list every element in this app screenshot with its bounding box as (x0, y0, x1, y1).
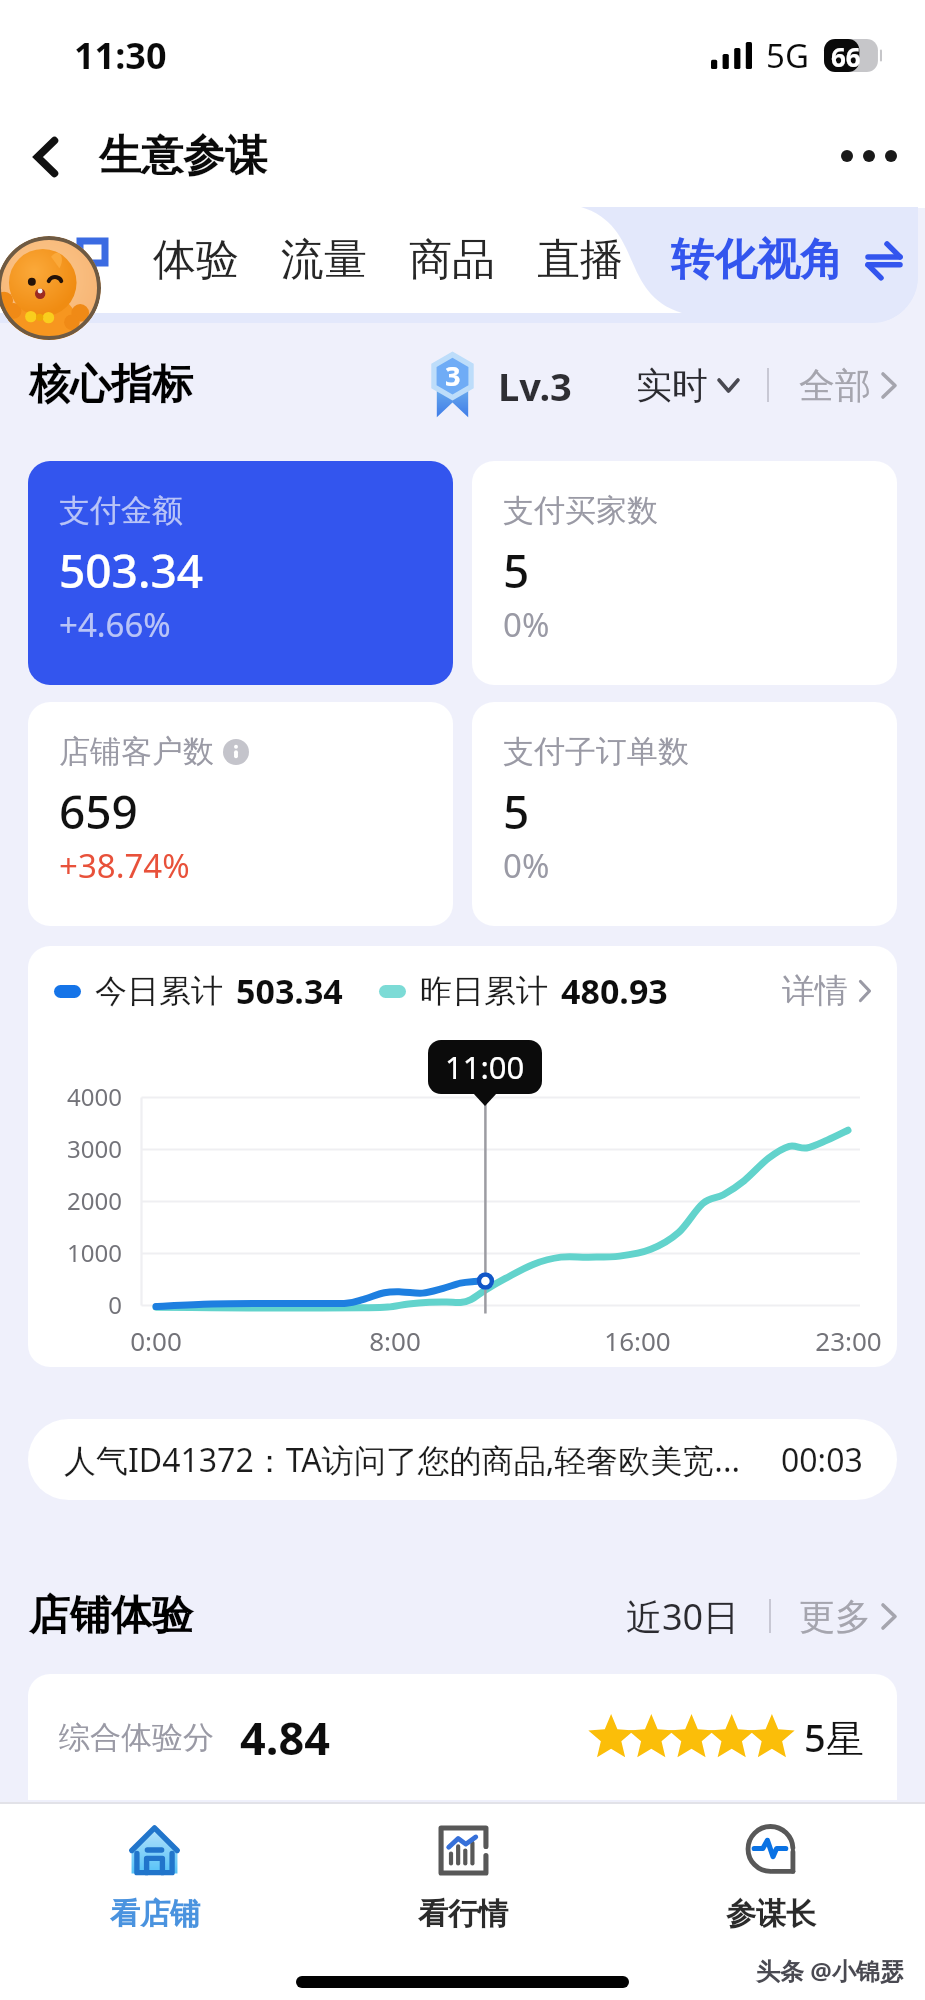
button[interactable]: 流量 (260, 217, 388, 303)
staticText: 详情 (782, 970, 848, 1012)
staticText: 人气ID41372：TA访问了您的商品,轻奢欧美宽... (64, 1438, 741, 1482)
button[interactable]: 更多 (799, 1594, 897, 1639)
staticText: 流量 (281, 233, 367, 287)
button[interactable]: 全部 (799, 363, 897, 408)
staticText: 503.34 (59, 539, 204, 602)
staticText: 昨日累计 (420, 971, 548, 1011)
staticText: 店铺客户数 (59, 732, 214, 771)
staticText: 头条 @小锦瑟 (756, 1954, 904, 1987)
staticText: 23:00 (815, 1323, 882, 1358)
button[interactable]: 体验 (132, 217, 260, 303)
staticText: 全部 (799, 363, 871, 408)
staticText: 5 (503, 780, 530, 843)
staticText: 480.93 (561, 968, 668, 1014)
button[interactable]: 近30日 (626, 1592, 740, 1641)
button[interactable]: More options (831, 128, 907, 184)
staticText: 转化视角 (671, 233, 843, 287)
button[interactable]: 商品 (388, 217, 516, 303)
staticText: 核心指标 (29, 359, 193, 411)
button[interactable]: 支付买家数 (472, 461, 897, 685)
button[interactable]: 店铺客户数 (28, 702, 453, 926)
staticText: 更多 (799, 1594, 871, 1639)
staticText: 4.84 (240, 1707, 330, 1768)
button[interactable]: 看店铺 (0, 1809, 309, 1949)
button[interactable]: 详情 (782, 970, 871, 1012)
button[interactable]: 支付子订单数 (472, 702, 897, 926)
staticText: 4000 (67, 1080, 122, 1113)
button[interactable]: Back (16, 127, 76, 187)
button[interactable]: 人气ID41372：TA访问了您的商品,轻奢欧美宽... (28, 1419, 897, 1500)
staticText: 5 (503, 539, 530, 602)
staticText: 66 (831, 39, 861, 72)
staticText: 11:00 (445, 1046, 525, 1088)
staticText: 00:03 (781, 1438, 863, 1482)
staticText: 参谋长 (726, 1895, 816, 1933)
button[interactable]: 实时 (636, 363, 740, 408)
button[interactable]: 转化视角 (646, 217, 910, 303)
staticText: 店铺体验 (29, 1590, 193, 1642)
staticText: 看行情 (418, 1895, 508, 1933)
button[interactable]: 支付金额 (28, 461, 453, 685)
staticText: 16:00 (604, 1323, 671, 1358)
staticText: 支付买家数 (503, 491, 658, 530)
staticText: 659 (59, 780, 138, 843)
staticText: 体验 (153, 233, 239, 287)
staticText: +4.66% (59, 602, 171, 647)
staticText: 支付子订单数 (503, 732, 689, 771)
staticText: 5星 (804, 1711, 864, 1763)
staticText: 0% (503, 602, 550, 647)
staticText: 11:30 (74, 31, 167, 80)
button[interactable]: 直播 (516, 217, 644, 303)
staticText: 今日累计 (95, 971, 223, 1011)
staticText: 3000 (67, 1132, 122, 1165)
staticText: 生意参谋 (99, 130, 267, 183)
staticText: 1000 (67, 1236, 122, 1269)
staticText: 0:00 (130, 1323, 182, 1358)
staticText: 支付金额 (59, 491, 183, 530)
staticText: 商品 (409, 233, 495, 287)
staticText: 看店铺 (110, 1895, 200, 1933)
staticText: 近30日 (626, 1592, 740, 1641)
staticText: 实时 (636, 363, 708, 408)
staticText: 503.34 (236, 968, 343, 1014)
staticText: 0% (503, 843, 550, 888)
button[interactable]: 看行情 (309, 1809, 617, 1949)
staticText: 直播 (537, 233, 623, 287)
staticText: 3 (445, 357, 461, 394)
button[interactable]: 综合体验分 (28, 1674, 897, 1800)
staticText: Lv.3 (498, 360, 572, 412)
staticText: 5G (766, 33, 809, 78)
staticText: +38.74% (59, 843, 190, 888)
staticText: 8:00 (369, 1323, 421, 1358)
staticText: 0 (108, 1288, 122, 1321)
button[interactable]: Profile avatar (0, 236, 101, 340)
staticText: 综合体验分 (59, 1718, 214, 1757)
button[interactable]: 3 (428, 353, 572, 418)
staticText: 2000 (67, 1184, 122, 1217)
button[interactable]: 参谋长 (617, 1809, 925, 1949)
